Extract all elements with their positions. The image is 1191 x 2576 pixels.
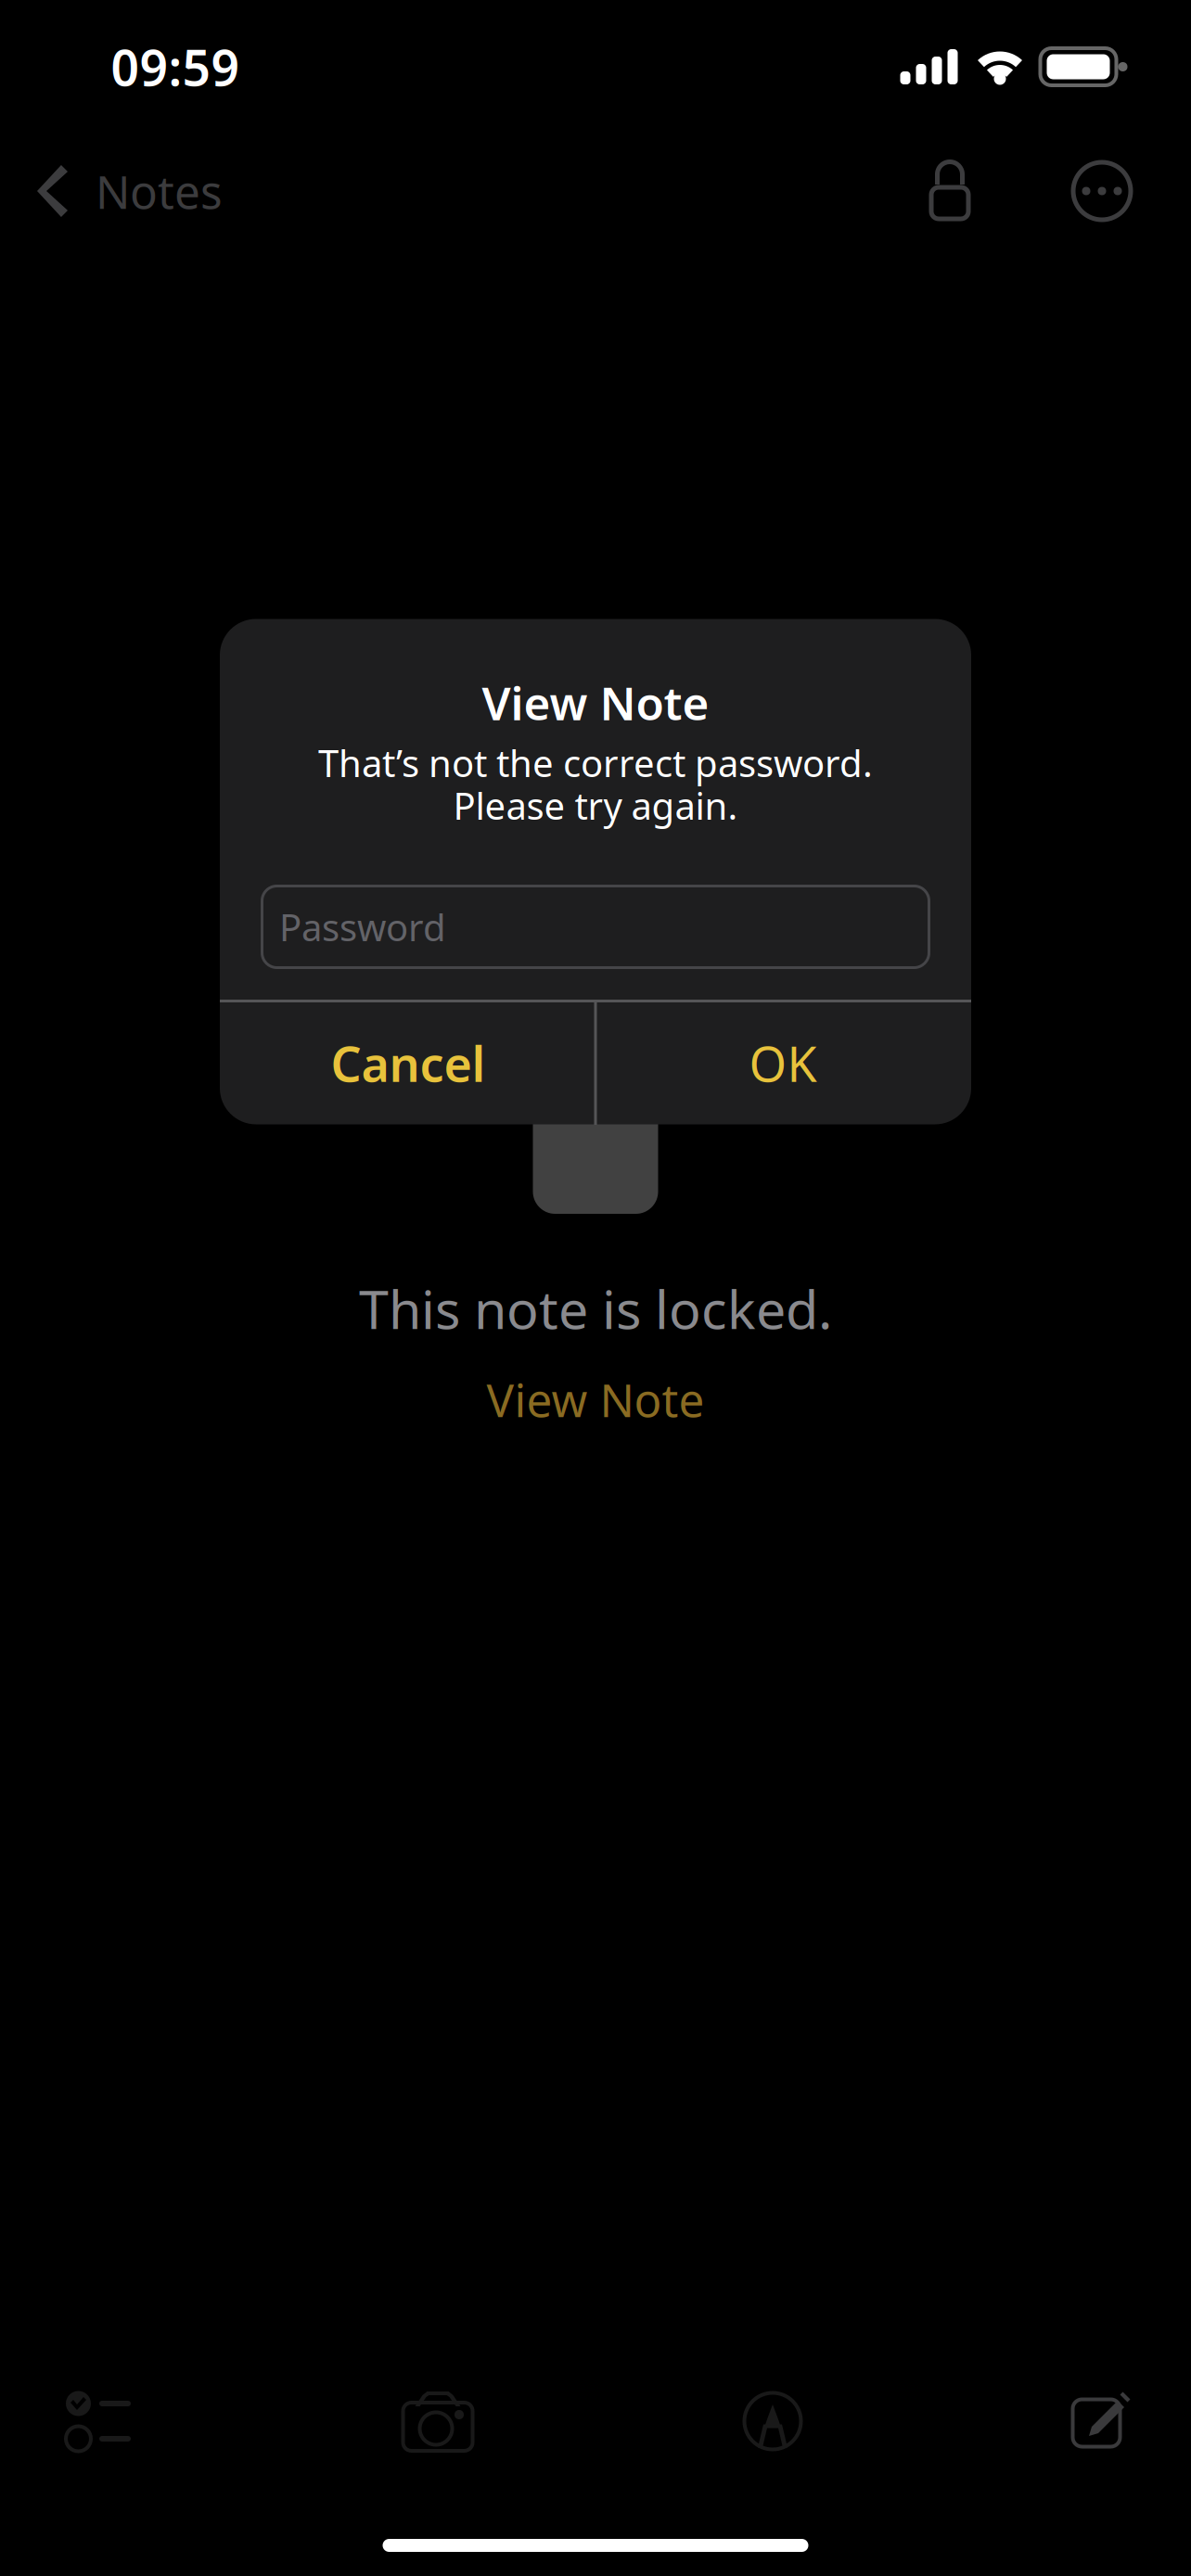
button[interactable]: New Note bbox=[1031, 2363, 1170, 2474]
staticText: Please try again. bbox=[453, 781, 738, 830]
staticText: Cancel bbox=[331, 1031, 486, 1095]
staticText: OK bbox=[749, 1031, 817, 1095]
staticText: Notes bbox=[96, 161, 223, 221]
staticText: 09:59 bbox=[111, 34, 240, 100]
staticText: Password bbox=[279, 902, 446, 951]
button[interactable]: View Note bbox=[464, 1356, 727, 1443]
staticText: View Note bbox=[482, 672, 709, 733]
button[interactable]: Notes bbox=[0, 135, 245, 247]
button[interactable]: Lock Note bbox=[899, 140, 1001, 242]
button[interactable]: OK bbox=[596, 1001, 970, 1125]
staticText: View Note bbox=[487, 1369, 704, 1430]
button[interactable]: Cancel bbox=[221, 1001, 595, 1125]
button[interactable]: More bbox=[1051, 140, 1153, 242]
button[interactable]: Camera bbox=[368, 2366, 507, 2478]
button[interactable]: Markup bbox=[703, 2366, 842, 2477]
button[interactable]: Checklist bbox=[29, 2366, 168, 2477]
staticText: That’s not the correct password. bbox=[318, 738, 873, 787]
staticText: This note is locked. bbox=[359, 1273, 832, 1344]
